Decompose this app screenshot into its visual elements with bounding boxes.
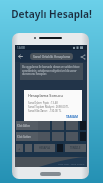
- staticText: TEMİZLE: [70, 146, 81, 150]
- staticText: Detaylı Hesapla!: [11, 7, 92, 21]
- button[interactable]: Back: [16, 52, 25, 61]
- button[interactable]: Share: [78, 52, 87, 61]
- button[interactable]: Symbols: [16, 144, 23, 152]
- staticText: X lot Aldım: [17, 124, 31, 128]
- button[interactable]: X lot Sattım: [16, 132, 38, 141]
- staticText: TAMAM: [66, 115, 79, 119]
- staticText: HESAPLA: [39, 146, 51, 150]
- staticText: hisse takip - sanal ortaklık: [58, 163, 85, 166]
- button[interactable]: TEMİZLE: [65, 144, 86, 152]
- button[interactable]: Bu uygulama ile borsada alınan ve satıla…: [20, 63, 83, 80]
- button[interactable]: HESAPLA: [34, 144, 55, 152]
- button[interactable]: X lot Aldım: [16, 121, 38, 130]
- button[interactable]: Sanal Ortaklık Hesaplama: [30, 53, 73, 60]
- staticText: Hesaplama Sonucu: [28, 93, 63, 98]
- staticText: Sanal İşlem Fiyatı : 13.48 Sanal Toplam …: [28, 101, 69, 113]
- staticText: Sanal Ortaklık Hesaplama: [33, 55, 71, 59]
- staticText: Bu uygulama ile borsada alınan ve satıla…: [22, 65, 81, 76]
- button[interactable]: TAMAM: [63, 113, 82, 121]
- staticText: X lot Sattım: [17, 135, 31, 139]
- staticText: 14:08: [17, 46, 25, 50]
- staticText: +: [18, 146, 21, 151]
